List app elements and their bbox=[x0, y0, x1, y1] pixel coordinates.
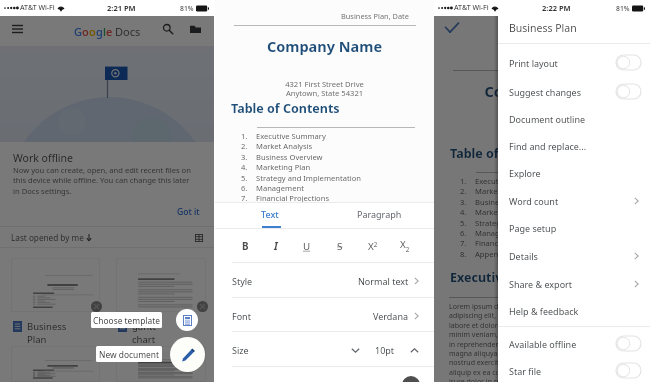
button[interactable]: Italic bbox=[265, 235, 287, 257]
staticText: Appendix bbox=[475, 249, 509, 259]
staticText: o bbox=[89, 24, 96, 39]
staticText: Business Plan bbox=[509, 21, 577, 35]
staticText: 6. bbox=[460, 228, 475, 238]
button[interactable]: Document outline bbox=[509, 105, 639, 132]
staticText: Page setup bbox=[509, 222, 557, 234]
staticText: Work offline bbox=[13, 151, 73, 165]
button[interactable]: Explore bbox=[509, 159, 639, 186]
button[interactable]: Superscript bbox=[362, 235, 384, 257]
staticText: 2. bbox=[460, 186, 475, 196]
staticText: Business Plan, Date bbox=[560, 56, 628, 66]
staticText: G bbox=[74, 24, 82, 39]
button[interactable]: Suggest changes bbox=[509, 78, 641, 105]
staticText: 4. bbox=[241, 162, 256, 172]
button[interactable]: Size bbox=[215, 333, 434, 367]
staticText: 5. bbox=[460, 218, 475, 228]
staticText: Business Plan, Date bbox=[341, 11, 409, 21]
button[interactable]: Text bbox=[215, 202, 324, 227]
staticText: o bbox=[82, 24, 89, 39]
staticText: Business Plan bbox=[27, 320, 67, 346]
staticText: Style bbox=[232, 275, 253, 287]
staticText: Executive Summary bbox=[450, 269, 573, 286]
staticText: New document bbox=[99, 349, 159, 360]
button[interactable]: Choose template bbox=[91, 312, 162, 328]
staticText: Docs bbox=[115, 24, 141, 39]
staticText: Suggest changes bbox=[509, 86, 581, 98]
staticText: 1. bbox=[460, 176, 475, 186]
staticText: Anytown, State 54321 bbox=[215, 88, 434, 98]
button[interactable]: Paragraph bbox=[324, 202, 434, 227]
staticText: Company Name bbox=[215, 36, 434, 56]
staticText: Now you can create, open, and edit recen… bbox=[13, 165, 196, 197]
button[interactable]: Star file bbox=[509, 357, 641, 382]
button[interactable]: Strikethrough bbox=[329, 235, 351, 257]
button[interactable]: Details bbox=[509, 242, 639, 269]
staticText: Market Analysis bbox=[256, 141, 313, 151]
button[interactable]: New document bbox=[170, 337, 205, 372]
staticText: Choose template bbox=[93, 315, 160, 326]
staticText: 3. bbox=[460, 197, 475, 207]
button[interactable]: Print layout bbox=[509, 49, 641, 76]
button[interactable]: Share & export bbox=[509, 270, 639, 297]
button[interactable]: Font bbox=[215, 299, 434, 332]
staticText: Company Name bbox=[434, 81, 650, 101]
staticText: 4. bbox=[460, 207, 475, 217]
staticText: Available offline bbox=[509, 338, 577, 350]
staticText: gantt chart bbox=[132, 320, 156, 346]
staticText: g bbox=[96, 24, 103, 39]
staticText: Size bbox=[232, 344, 249, 356]
staticText: Management bbox=[475, 228, 523, 238]
button[interactable]: Search bbox=[158, 19, 177, 38]
staticText: Print layout bbox=[509, 57, 558, 69]
button[interactable]: More options bbox=[91, 301, 102, 312]
staticText: Font bbox=[232, 310, 251, 322]
button[interactable]: Choose template bbox=[176, 309, 198, 331]
staticText: Verdana bbox=[373, 310, 409, 322]
staticText: Strategy and Implementation bbox=[256, 173, 361, 183]
button[interactable]: Subscript bbox=[394, 235, 416, 257]
staticText: 2:21 PM bbox=[107, 3, 136, 13]
staticText: adipiscing elit, sed do eiusmod tempor bbox=[449, 311, 577, 321]
staticText: Document outline bbox=[509, 113, 586, 125]
staticText: 7. bbox=[241, 193, 256, 203]
staticText: Table of Contents bbox=[450, 145, 559, 162]
button[interactable]: Page setup bbox=[509, 214, 639, 241]
button[interactable]: Grid view bbox=[192, 231, 205, 244]
staticText: 1. bbox=[241, 131, 256, 141]
button[interactable]: Got it bbox=[174, 203, 203, 221]
button[interactable]: Help & feedback bbox=[509, 297, 639, 324]
staticText: labore et dolore magna aliqua. Ut enim bbox=[449, 321, 578, 331]
staticText: Lorem ipsum dolor sit amet, consectetur bbox=[449, 302, 583, 312]
staticText: AT&T Wi-Fi bbox=[20, 3, 55, 13]
button[interactable]: Style bbox=[215, 264, 434, 297]
staticText: Last opened by me bbox=[11, 232, 84, 243]
staticText: Executive Summary bbox=[475, 176, 545, 186]
staticText: Strategy and Implementation bbox=[475, 218, 580, 228]
staticText: Star file bbox=[509, 365, 542, 377]
button[interactable]: Last opened by me bbox=[11, 232, 92, 243]
button[interactable]: Word count bbox=[509, 187, 639, 214]
staticText: B bbox=[242, 240, 249, 253]
staticText: Marketing Plan bbox=[475, 207, 530, 217]
button[interactable]: Bold bbox=[234, 235, 256, 257]
button[interactable]: More options bbox=[116, 258, 206, 346]
staticText: 8. bbox=[460, 249, 475, 259]
button[interactable]: Folders bbox=[186, 19, 205, 38]
button[interactable]: More options bbox=[11, 258, 100, 346]
staticText: Word count bbox=[509, 195, 559, 207]
button[interactable]: Underline bbox=[296, 235, 318, 257]
staticText: 6. bbox=[241, 183, 256, 193]
button[interactable]: More options bbox=[197, 301, 208, 312]
staticText: nostrud exercitation ullamco laboris nis… bbox=[449, 358, 581, 368]
button[interactable]: Available offline bbox=[509, 330, 641, 357]
staticText: 7. bbox=[460, 238, 475, 248]
button[interactable]: Text color bbox=[215, 368, 434, 382]
staticText: Business Overview bbox=[256, 152, 323, 162]
staticText: S bbox=[337, 240, 343, 253]
button[interactable]: Menu bbox=[8, 19, 27, 38]
button[interactable]: New document bbox=[96, 346, 162, 362]
staticText: Share & export bbox=[509, 278, 573, 290]
button[interactable]: Find and replace... bbox=[509, 132, 639, 159]
staticText: Appendix bbox=[256, 204, 290, 214]
